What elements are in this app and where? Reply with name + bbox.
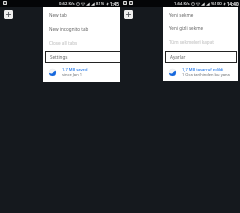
button[interactable]: 1.7 MB saved bbox=[43, 64, 120, 82]
staticText: 0.62 K/s bbox=[59, 1, 75, 7]
staticText: Tüm sekmeleri kapat bbox=[169, 39, 214, 45]
staticText: New tab bbox=[49, 12, 67, 18]
staticText: 1.64 K/s bbox=[174, 1, 190, 7]
staticText: since Jan 1 bbox=[62, 72, 83, 78]
button[interactable]: New tab bbox=[43, 8, 120, 22]
staticText: Yeni gizli sekme bbox=[169, 25, 204, 31]
staticText: 1.7 MB saved bbox=[62, 67, 88, 73]
button[interactable]: New tab bbox=[4, 10, 13, 19]
staticText: 1,7 MB tasarruf edildi bbox=[182, 67, 224, 73]
button[interactable]: Ayarlar bbox=[165, 51, 237, 63]
staticText: Settings bbox=[50, 54, 68, 60]
staticText: Yeni sekme bbox=[169, 12, 194, 18]
staticText: Ayarlar bbox=[170, 54, 186, 60]
button[interactable]: Yeni sekme bbox=[163, 8, 238, 22]
staticText: New incognito tab bbox=[49, 26, 89, 32]
staticText: %100 bbox=[211, 1, 222, 7]
button[interactable]: New tab bbox=[124, 10, 133, 19]
staticText: 14:40 bbox=[227, 1, 239, 7]
button[interactable]: Yeni gizli sekme bbox=[163, 21, 238, 35]
staticText: Close all tabs bbox=[49, 40, 78, 46]
button[interactable]: Tüm sekmeleri kapat bbox=[163, 35, 238, 49]
staticText: 1:45 bbox=[110, 1, 119, 7]
button[interactable]: Settings bbox=[45, 51, 120, 63]
button[interactable]: 1,7 MB tasarruf edildi bbox=[163, 64, 238, 81]
staticText: 1 Oca tarihinden bu yana bbox=[182, 72, 230, 78]
button[interactable]: New incognito tab bbox=[43, 22, 120, 36]
staticText: 81% bbox=[96, 1, 105, 7]
button[interactable]: Close all tabs bbox=[43, 36, 120, 50]
